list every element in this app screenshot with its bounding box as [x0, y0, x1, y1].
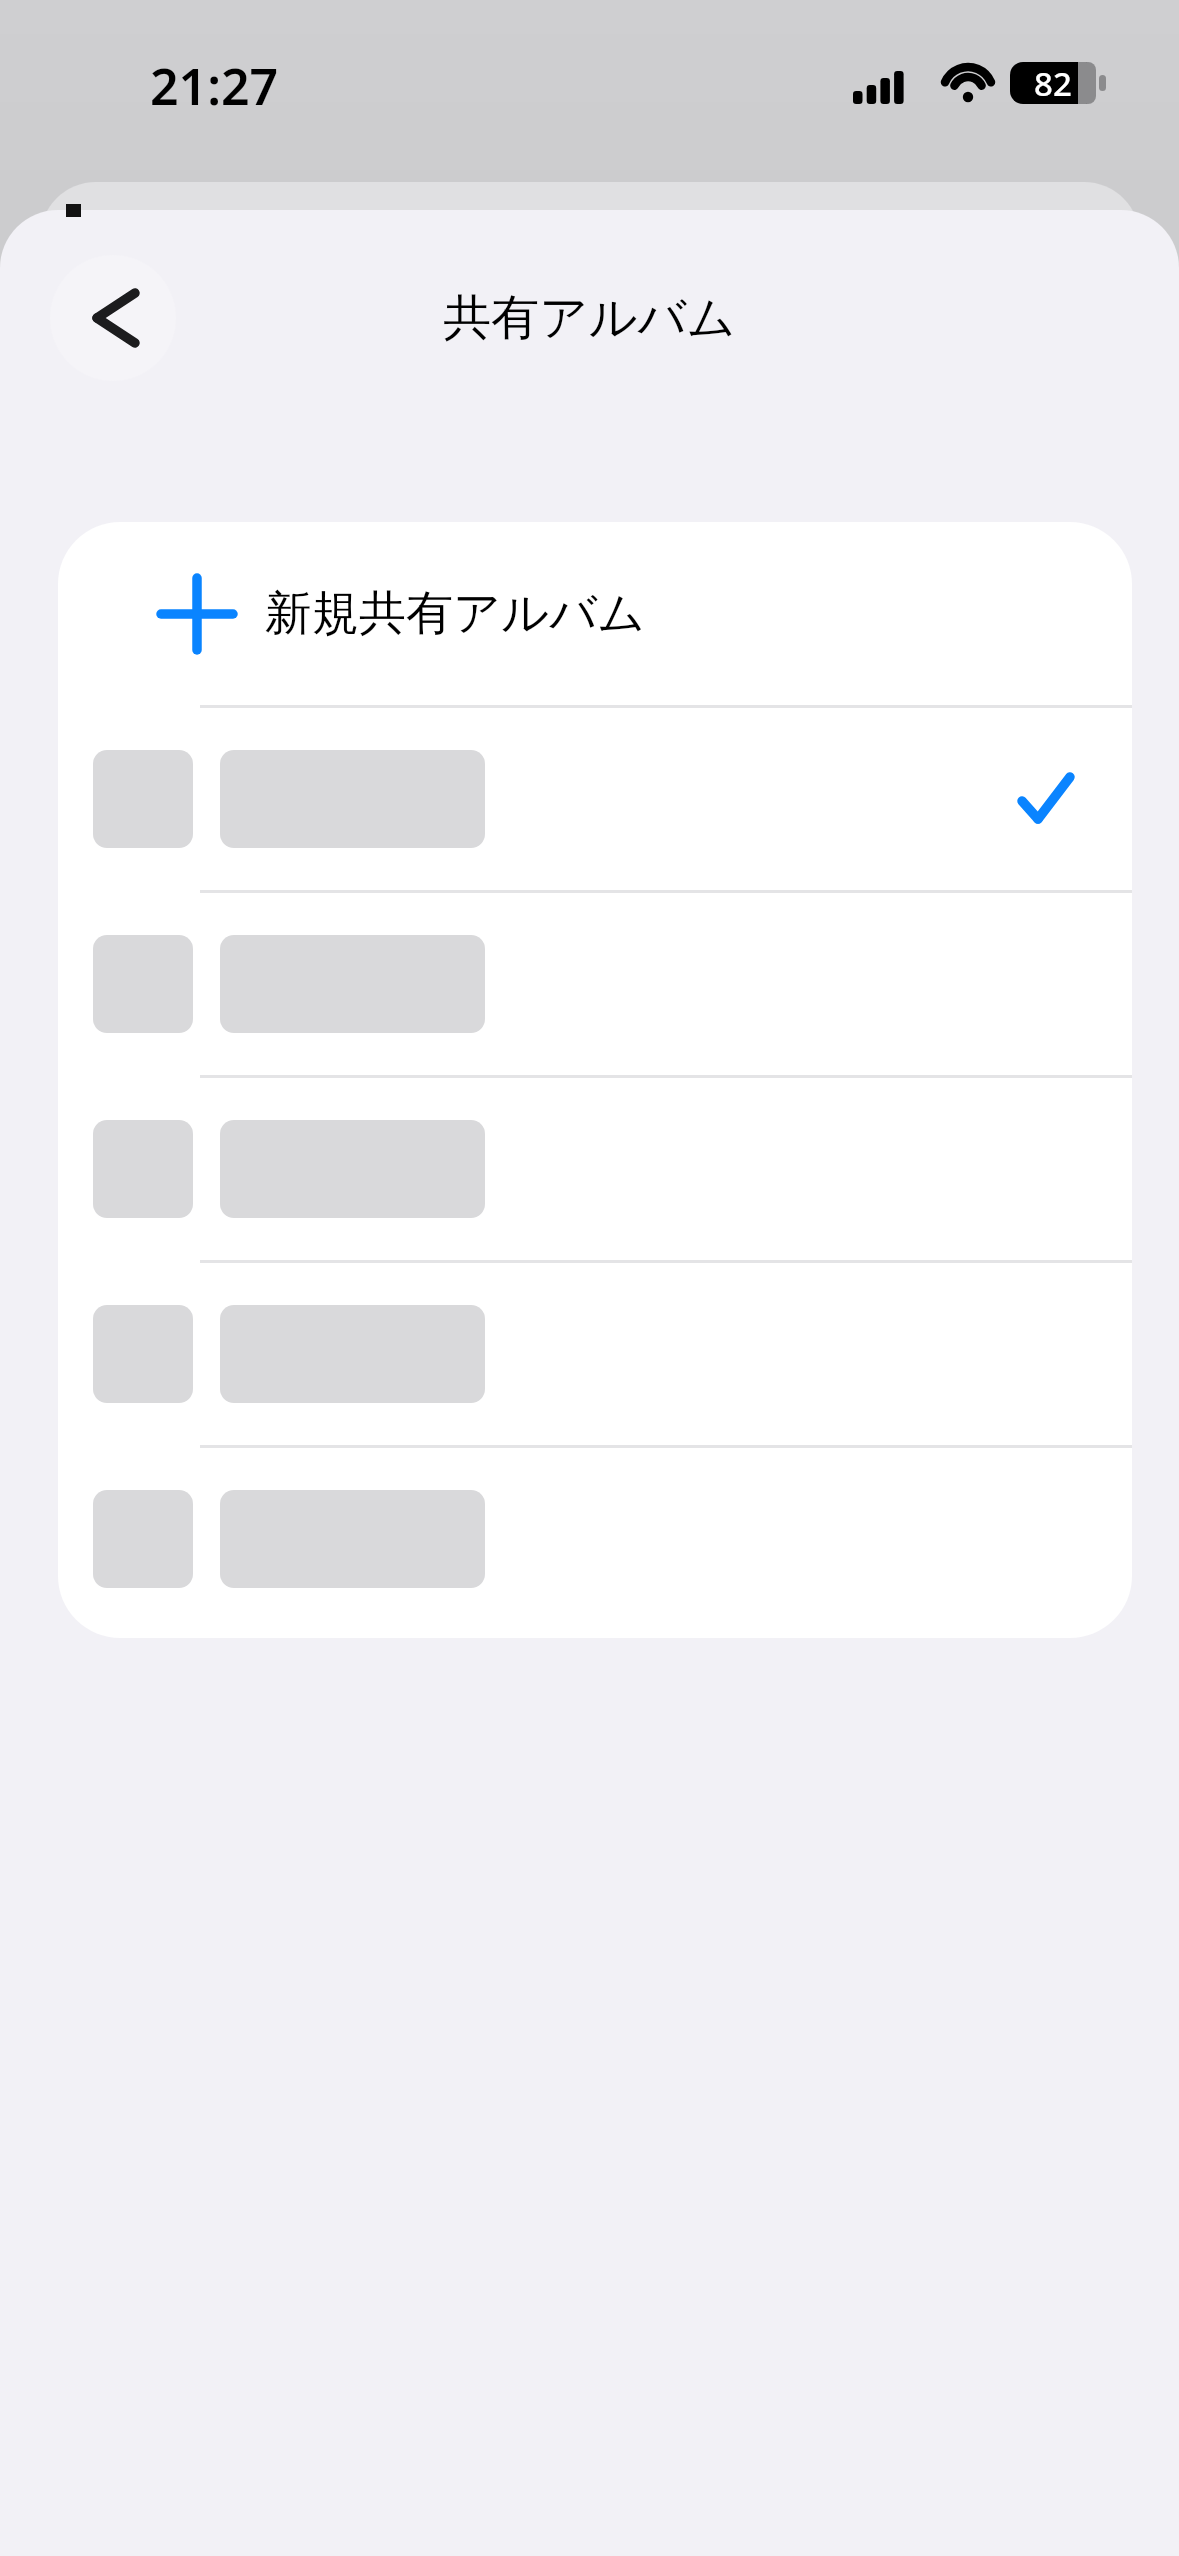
staticText: 共有アルバム	[443, 288, 736, 348]
button[interactable]	[58, 1263, 1132, 1445]
button[interactable]	[58, 708, 1132, 890]
button[interactable]: 戻る	[50, 255, 176, 381]
staticText: 新規共有アルバム	[265, 584, 646, 643]
button[interactable]	[58, 893, 1132, 1075]
staticText: 82	[1034, 61, 1072, 106]
staticText: 21:27	[150, 52, 279, 114]
button[interactable]	[58, 1448, 1132, 1630]
button[interactable]	[58, 1078, 1132, 1260]
button[interactable]: 新規共有アルバム	[58, 522, 1132, 705]
